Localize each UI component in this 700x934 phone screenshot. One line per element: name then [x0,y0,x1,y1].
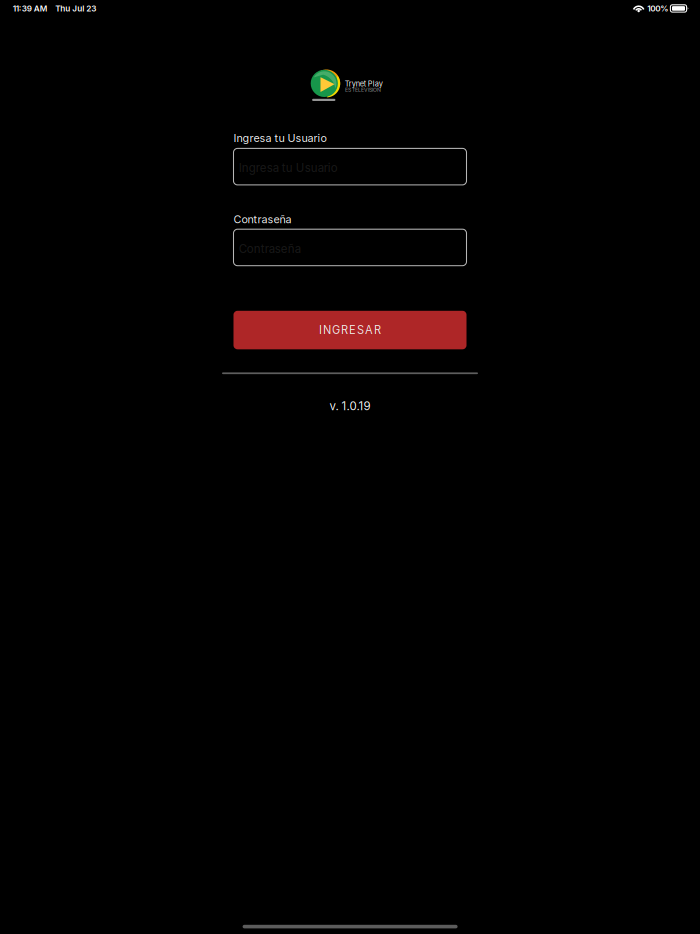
staticText: INGRESAR [319,323,381,337]
staticText: Contraseña [233,213,291,226]
staticText: Ingresa tu Usuario [233,131,326,145]
staticText: Contraseña [239,242,301,256]
button[interactable]: Ingresa tu Usuario [233,148,466,185]
button[interactable]: Contraseña [233,229,466,266]
staticText: 100% [647,3,668,13]
staticText: Thu Jul 23 [55,3,96,13]
button[interactable]: INGRESAR [233,311,466,349]
staticText: 11:39 AM [13,3,48,13]
staticText: Ingresa tu Usuario [239,161,338,175]
staticText: Trynet Play [345,79,383,88]
staticText: ES TELEVISION [345,87,381,93]
staticText: v. 1.0.19 [329,399,370,413]
